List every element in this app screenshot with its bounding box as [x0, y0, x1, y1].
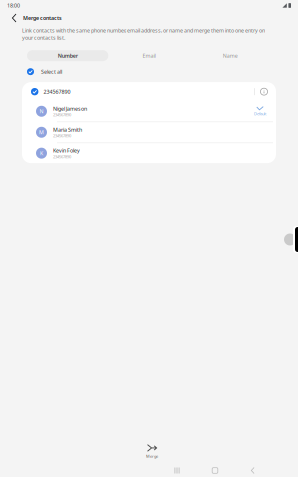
staticText: 234567890	[53, 154, 71, 159]
staticText: M	[39, 129, 44, 136]
staticText: 18:00	[7, 2, 20, 9]
staticText: Email	[142, 52, 155, 59]
button[interactable]: Select all	[0, 61, 298, 82]
button[interactable]: N	[22, 101, 276, 122]
button[interactable]: Merge	[132, 443, 172, 460]
button[interactable]: Info	[255, 83, 273, 100]
staticText: Link contacts with the same phone number…	[22, 27, 265, 41]
staticText: Name	[223, 52, 238, 59]
staticText: Default	[254, 111, 266, 116]
staticText: 234567890	[53, 112, 71, 117]
button[interactable]: Home	[196, 464, 234, 477]
staticText: 234567890	[53, 133, 71, 138]
button[interactable]: Back	[6, 11, 23, 25]
staticText: Nigel Jameson	[53, 105, 87, 112]
button[interactable]: Email	[108, 50, 190, 61]
button[interactable]: Name	[190, 50, 271, 61]
staticText: K	[40, 150, 43, 157]
staticText: Merge contacts	[23, 14, 62, 22]
staticText: Maria Smith	[53, 126, 82, 133]
button[interactable]: K	[22, 143, 276, 163]
button[interactable]: M	[22, 122, 276, 143]
button[interactable]: Back	[234, 464, 272, 477]
button[interactable]: Number	[27, 50, 108, 61]
staticText: Kevin Foley	[53, 147, 80, 154]
button[interactable]: Recents	[158, 464, 196, 477]
staticText: Select all	[41, 68, 62, 75]
staticText: 234567890	[43, 88, 70, 95]
staticText: N	[39, 108, 43, 115]
staticText: Number	[58, 52, 78, 59]
staticText: Merge	[146, 454, 158, 459]
